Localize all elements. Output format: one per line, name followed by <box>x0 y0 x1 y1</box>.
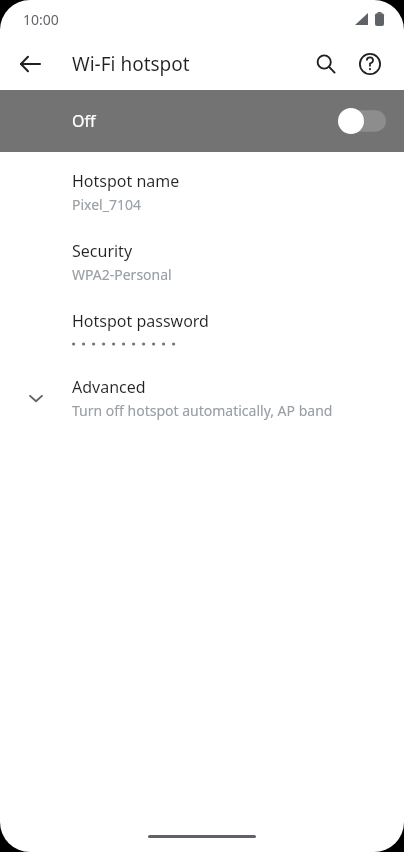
button[interactable]: Off <box>0 90 404 152</box>
staticText: Security <box>72 240 133 262</box>
button[interactable]: Security <box>0 238 404 286</box>
staticText: 10:00 <box>23 10 59 29</box>
button[interactable]: Hotspot password <box>0 308 404 354</box>
button[interactable]: Help <box>348 42 392 86</box>
staticText: WPA2-Personal <box>72 265 172 284</box>
button[interactable]: Advanced <box>0 376 404 420</box>
button[interactable]: Search <box>304 42 348 86</box>
staticText: Off <box>72 110 96 132</box>
button[interactable]: Back <box>8 42 52 86</box>
button[interactable]: Hotspot name <box>0 168 404 216</box>
staticText: Wi-Fi hotspot <box>72 51 190 77</box>
staticText: Advanced <box>72 376 146 398</box>
staticText: Hotspot name <box>72 170 180 192</box>
staticText: Turn off hotspot automatically, AP band <box>72 401 333 420</box>
staticText: Hotspot password <box>72 310 209 332</box>
staticText: Pixel_7104 <box>72 195 141 214</box>
